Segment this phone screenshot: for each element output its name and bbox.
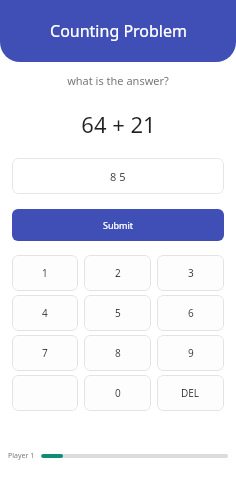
staticText: 64 + 21 bbox=[81, 109, 156, 139]
button[interactable]: 6 bbox=[157, 295, 224, 331]
staticText: 4 bbox=[42, 306, 48, 320]
staticText: 8 5 bbox=[110, 169, 126, 184]
staticText: 1 bbox=[42, 266, 48, 280]
staticText: Player 1 bbox=[8, 451, 35, 461]
staticText: 6 bbox=[188, 306, 194, 320]
staticText: 3 bbox=[188, 266, 194, 280]
button[interactable]: 2 bbox=[84, 255, 151, 291]
staticText: DEL bbox=[181, 386, 200, 400]
button[interactable]: 7 bbox=[12, 335, 78, 371]
button[interactable]: 5 bbox=[84, 295, 151, 331]
staticText: 0 bbox=[115, 386, 121, 400]
staticText: 9 bbox=[188, 346, 194, 360]
button[interactable]: 8 5 bbox=[12, 158, 224, 194]
button[interactable]: 1 bbox=[12, 255, 78, 291]
button[interactable]: 9 bbox=[157, 335, 224, 371]
staticText: 5 bbox=[115, 306, 121, 320]
button[interactable]: 8 bbox=[84, 335, 151, 371]
button[interactable]: Submit bbox=[12, 209, 224, 241]
button[interactable]: DEL bbox=[157, 375, 224, 411]
button[interactable]: blank key bbox=[12, 375, 78, 411]
staticText: Submit bbox=[103, 219, 134, 231]
button[interactable]: 0 bbox=[84, 375, 151, 411]
staticText: what is the answer? bbox=[67, 73, 169, 88]
staticText: 8 bbox=[115, 346, 121, 360]
button[interactable]: 3 bbox=[157, 255, 224, 291]
staticText: 2 bbox=[115, 266, 121, 280]
staticText: Counting Problem bbox=[50, 20, 187, 42]
button[interactable]: 4 bbox=[12, 295, 78, 331]
staticText: 7 bbox=[42, 346, 48, 360]
